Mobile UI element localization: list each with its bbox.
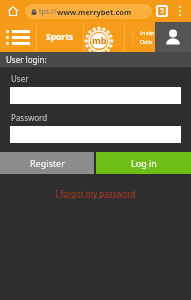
staticText: Sports: [46, 31, 74, 43]
button[interactable]: Account: [155, 22, 191, 52]
button[interactable]: Tabs: [156, 5, 168, 17]
button[interactable]: More options: [173, 4, 187, 18]
button[interactable]: Sports: [37, 22, 83, 52]
button[interactable]: 1: [125, 22, 155, 52]
button[interactable]: I forgot my password: [51, 186, 140, 201]
staticText: Odds: [140, 39, 153, 46]
staticText: User login:: [6, 54, 47, 65]
staticText: merrybet: [94, 46, 105, 49]
button[interactable]: Menu: [0, 22, 36, 52]
staticText: Password: [11, 112, 48, 123]
button[interactable]: Home: [4, 2, 22, 20]
button[interactable]: Merrybet logo: [84, 26, 114, 56]
staticText: www.merrybet.com: [57, 7, 132, 17]
button[interactable]: Log in: [96, 152, 191, 174]
staticText: mb: [92, 34, 107, 46]
button[interactable]: Register: [0, 152, 94, 174]
staticText: tps://: [39, 7, 57, 17]
button[interactable]: Merrybet home: [84, 22, 124, 52]
staticText: 1: [128, 26, 138, 49]
staticText: In slip: [140, 30, 155, 37]
staticText: User: [11, 73, 29, 84]
staticText: 5: [160, 6, 165, 16]
staticText: Register: [30, 157, 65, 169]
button[interactable]: tps://: [25, 4, 152, 19]
staticText: Log in: [131, 157, 157, 169]
